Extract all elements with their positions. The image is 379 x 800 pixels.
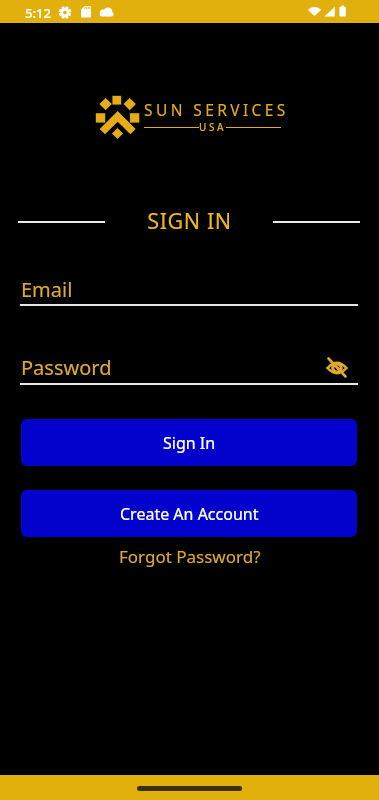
staticText: Forgot Password? (119, 545, 261, 568)
staticText: SUN SERVICES (144, 99, 289, 120)
button[interactable]: Forgot Password? (100, 543, 280, 569)
staticText: SIGN IN (0, 206, 379, 235)
staticText: USA (199, 120, 226, 134)
button[interactable] (326, 358, 348, 378)
button[interactable]: Create An Account (21, 490, 357, 537)
button[interactable]: Sign In (21, 419, 357, 466)
staticText: Password (21, 354, 112, 381)
staticText: Sign In (163, 432, 216, 454)
staticText: Email (21, 276, 73, 303)
staticText: Create An Account (120, 503, 259, 525)
staticText: 5:12 (25, 4, 51, 22)
